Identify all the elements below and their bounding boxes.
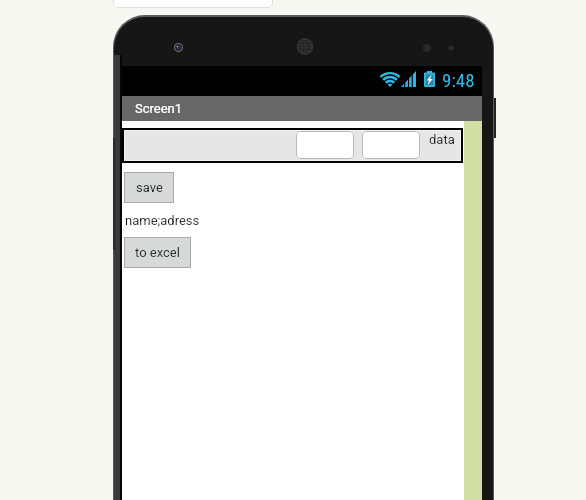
staticText: 9:48 bbox=[442, 69, 475, 91]
staticText: to excel bbox=[135, 245, 180, 260]
staticText: save bbox=[136, 180, 163, 195]
staticText: Screen1 bbox=[135, 101, 183, 116]
staticText: name;adress bbox=[125, 213, 200, 228]
button[interactable]: save bbox=[124, 172, 174, 203]
button[interactable]: Text input field bbox=[362, 131, 420, 159]
button[interactable]: to excel bbox=[124, 237, 191, 268]
button[interactable]: Text input field bbox=[296, 131, 354, 159]
staticText: data bbox=[429, 132, 455, 147]
